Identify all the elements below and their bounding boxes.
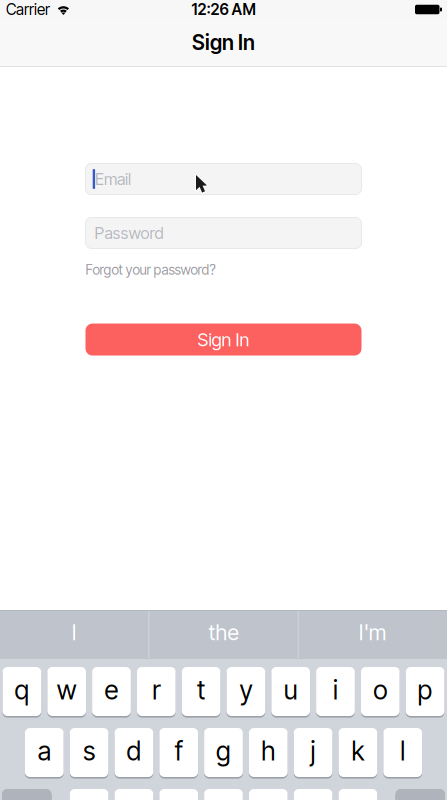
button[interactable]: j (294, 728, 332, 778)
staticText: e (104, 674, 118, 706)
staticText: I'm (359, 620, 387, 645)
button[interactable]: I (0, 610, 148, 659)
button[interactable]: the (149, 610, 298, 659)
staticText: d (126, 735, 141, 767)
button[interactable]: Sign In (85, 324, 361, 356)
button[interactable]: d (115, 728, 153, 778)
staticText: o (373, 674, 387, 706)
button[interactable]: b (249, 789, 288, 800)
staticText: h (261, 735, 275, 767)
button[interactable]: p (406, 667, 444, 717)
staticText: p (418, 674, 433, 706)
button[interactable]: w (47, 667, 86, 717)
button[interactable]: s (70, 728, 108, 778)
staticText: a (38, 735, 51, 767)
staticText: g (216, 735, 231, 767)
button[interactable]: I'm (299, 610, 447, 659)
staticText: Forgot your password? (85, 261, 215, 278)
staticText: Sign In (197, 329, 249, 350)
button[interactable]: u (271, 667, 310, 717)
staticText: Carrier (6, 0, 50, 19)
staticText: t (197, 674, 205, 706)
staticText: l (400, 735, 405, 767)
button[interactable]: e (92, 667, 131, 717)
button[interactable]: l (383, 728, 422, 778)
staticText: s (83, 735, 95, 767)
button[interactable]: m (339, 789, 377, 800)
staticText: k (351, 735, 364, 767)
button[interactable]: Password (85, 217, 361, 248)
staticText: the (208, 620, 238, 645)
staticText: y (239, 674, 252, 706)
button[interactable]: q (3, 667, 41, 717)
staticText: f (175, 735, 183, 767)
button[interactable]: z (70, 789, 108, 800)
staticText: i (333, 674, 338, 706)
staticText: u (284, 674, 298, 706)
staticText: Email (95, 169, 131, 189)
button[interactable]: r (137, 667, 176, 717)
button[interactable]: Email (85, 163, 361, 194)
button[interactable]: t (182, 667, 220, 717)
staticText: I (72, 620, 77, 645)
button[interactable]: Shift (2, 789, 51, 800)
button[interactable]: y (227, 667, 265, 717)
staticText: Sign In (192, 30, 255, 55)
staticText: Password (94, 223, 163, 243)
button[interactable]: Forgot your password? (85, 261, 215, 278)
button[interactable]: k (339, 728, 377, 778)
button[interactable]: Delete (395, 789, 445, 800)
button[interactable]: f (159, 728, 198, 778)
button[interactable]: g (204, 728, 243, 778)
button[interactable]: i (316, 667, 355, 717)
staticText: 12:26 AM (191, 0, 255, 19)
button[interactable]: x (115, 789, 153, 800)
staticText: w (57, 674, 77, 706)
staticText: q (14, 674, 29, 706)
button[interactable]: v (204, 789, 243, 800)
button[interactable]: c (159, 789, 198, 800)
button[interactable]: o (361, 667, 400, 717)
staticText: r (152, 674, 160, 706)
staticText: j (311, 735, 316, 767)
button[interactable]: h (249, 728, 288, 778)
button[interactable]: n (294, 789, 332, 800)
button[interactable]: a (25, 728, 64, 778)
